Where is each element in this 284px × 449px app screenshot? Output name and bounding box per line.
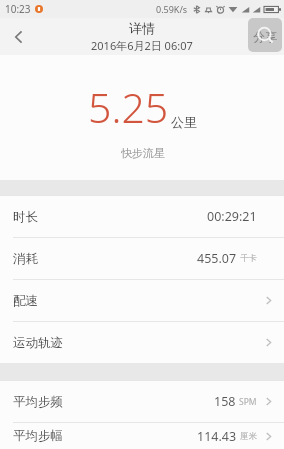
staticText: 消耗	[13, 251, 38, 267]
button[interactable]: 平均步频	[0, 381, 284, 422]
staticText: 公里	[171, 114, 197, 130]
staticText: 455.07	[197, 250, 237, 267]
button[interactable]: 返回	[0, 18, 38, 55]
staticText: 厘米	[240, 431, 257, 442]
staticText: 114.43	[197, 428, 237, 445]
staticText: 00:29:21	[207, 208, 257, 225]
button[interactable]: 平均步幅	[0, 423, 284, 449]
button[interactable]: 搜索	[248, 18, 282, 52]
button[interactable]: 消耗	[0, 238, 284, 279]
staticText: 详情	[129, 20, 155, 36]
staticText: 2016年6月2日 06:07	[91, 38, 193, 53]
staticText: 平均步幅	[13, 428, 63, 444]
staticText: 运动轨迹	[13, 335, 63, 351]
button[interactable]: 时长	[0, 196, 284, 237]
staticText: 配速	[13, 293, 38, 309]
staticText: 千卡	[240, 253, 257, 264]
staticText: SPM	[239, 396, 257, 408]
staticText: 时长	[13, 209, 38, 225]
staticText: 0.59K/s	[156, 3, 188, 15]
button[interactable]: 配速	[0, 280, 284, 321]
staticText: 分享	[253, 29, 277, 44]
staticText: 158	[214, 393, 236, 410]
button[interactable]: 运动轨迹	[0, 322, 284, 363]
staticText: 平均步频	[13, 394, 63, 410]
staticText: 10:23	[5, 2, 31, 16]
staticText: 快步流星	[121, 146, 165, 160]
button[interactable]: 分享	[253, 29, 277, 44]
staticText: 5.25	[88, 79, 169, 135]
